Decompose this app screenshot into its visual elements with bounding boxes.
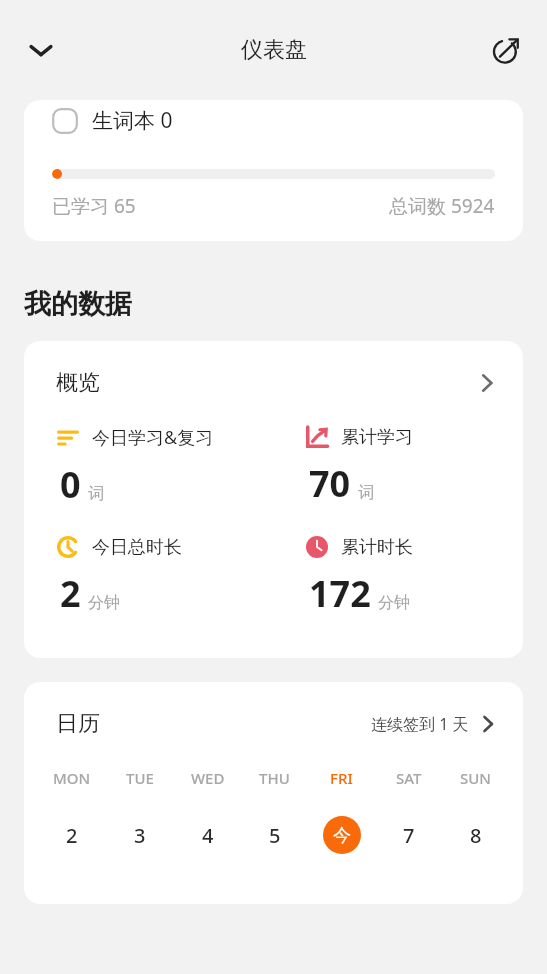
- staticText: 概览: [56, 369, 100, 397]
- staticText: 连续签到 1 天: [371, 713, 469, 735]
- staticText: SAT: [396, 768, 422, 788]
- staticText: 词: [358, 483, 374, 503]
- staticText: 累计时长: [341, 536, 413, 559]
- button[interactable]: 4: [174, 814, 241, 856]
- staticText: WED: [191, 768, 225, 788]
- button[interactable]: 3: [106, 814, 174, 856]
- button[interactable]: 5: [241, 814, 308, 856]
- button[interactable]: 7: [375, 814, 442, 856]
- button[interactable]: 2: [38, 814, 106, 856]
- staticText: TUE: [126, 768, 154, 788]
- staticText: 3: [134, 822, 146, 849]
- staticText: 分钟: [88, 593, 120, 613]
- staticText: 仪表盘: [241, 36, 307, 64]
- staticText: 已学习 65: [52, 193, 136, 219]
- staticText: 4: [202, 822, 214, 849]
- button[interactable]: 日历: [24, 682, 523, 746]
- staticText: 2: [60, 569, 81, 618]
- button[interactable]: Share: [481, 25, 531, 75]
- staticText: 0: [60, 460, 81, 509]
- staticText: 我的数据: [24, 287, 132, 321]
- staticText: 今日学习&复习: [92, 425, 214, 450]
- button[interactable]: 生词本 0: [24, 100, 523, 241]
- button[interactable]: Collapse: [16, 25, 66, 75]
- staticText: FRI: [330, 768, 353, 788]
- button[interactable]: 概览: [24, 341, 523, 407]
- staticText: 8: [470, 822, 482, 849]
- staticText: MON: [53, 768, 91, 788]
- staticText: 总词数 5924: [389, 193, 495, 219]
- staticText: THU: [259, 768, 290, 788]
- staticText: 日历: [56, 710, 100, 738]
- staticText: 70: [309, 459, 351, 508]
- staticText: 今日总时长: [92, 536, 182, 559]
- staticText: 今: [333, 824, 351, 847]
- staticText: 7: [403, 822, 415, 849]
- button[interactable]: 今: [308, 814, 375, 856]
- staticText: 词: [88, 484, 104, 504]
- staticText: 2: [66, 822, 78, 849]
- staticText: 172: [309, 569, 371, 618]
- staticText: SUN: [460, 768, 491, 788]
- staticText: 累计学习: [341, 426, 413, 449]
- staticText: 生词本 0: [92, 106, 173, 135]
- staticText: 5: [269, 822, 281, 849]
- staticText: 分钟: [378, 593, 410, 613]
- button[interactable]: 8: [442, 814, 509, 856]
